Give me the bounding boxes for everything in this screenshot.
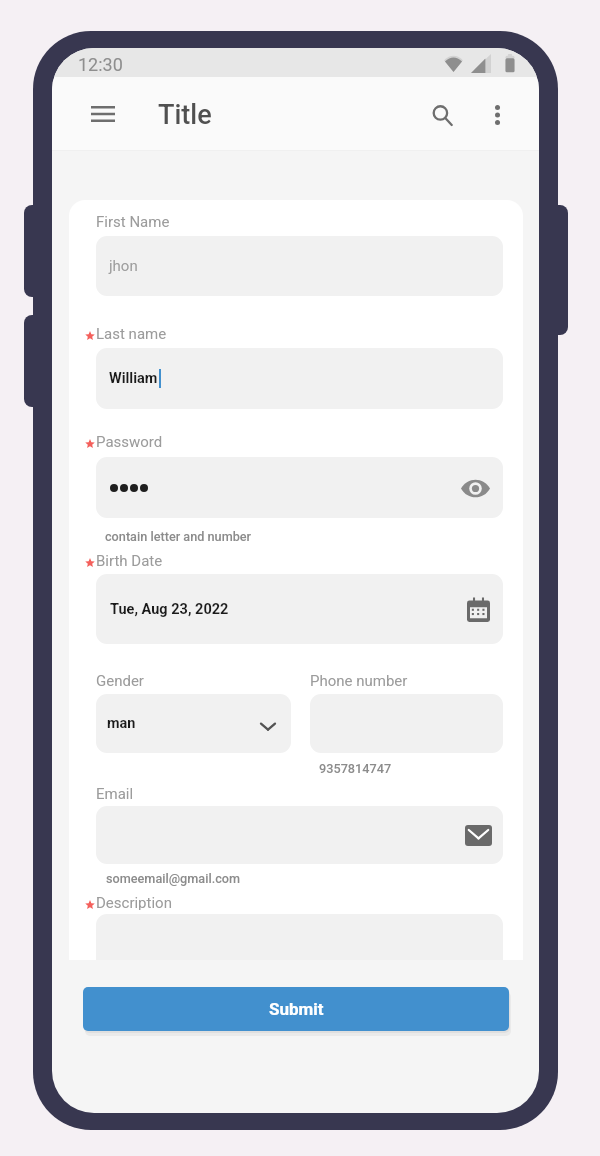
button[interactable]: Tue, Aug 23, 2022: [96, 574, 503, 644]
staticText: Submit: [269, 999, 324, 1019]
staticText: 12:30: [78, 54, 123, 75]
staticText: Title: [158, 99, 212, 131]
staticText: Password: [96, 433, 163, 449]
button[interactable]: jhon: [96, 236, 503, 296]
staticText: Tue, Aug 23, 2022: [110, 601, 229, 618]
staticText: Last name: [96, 325, 167, 341]
button[interactable]: Email: [462, 819, 494, 851]
button[interactable]: Show password: [96, 457, 503, 518]
button[interactable]: More options: [477, 95, 517, 135]
staticText: jhon: [109, 257, 138, 275]
button[interactable]: Open gender dropdown: [254, 712, 282, 740]
staticText: someemail@gmail.com: [106, 871, 241, 886]
staticText: man: [107, 715, 136, 732]
staticText: Phone number: [310, 672, 408, 688]
staticText: contain letter and number: [105, 529, 252, 544]
button[interactable]: Pick date: [462, 593, 494, 625]
button[interactable]: man: [96, 694, 291, 753]
button[interactable]: Show password: [459, 472, 491, 504]
staticText: William: [109, 370, 158, 387]
button[interactable]: William: [96, 348, 503, 409]
button[interactable]: Email: [96, 806, 503, 864]
staticText: Email: [96, 785, 134, 801]
button[interactable]: Menu: [79, 94, 127, 134]
staticText: Gender: [96, 672, 144, 688]
button[interactable]: Submit: [83, 987, 509, 1031]
staticText: Birth Date: [96, 552, 163, 568]
button[interactable]: Search: [419, 95, 465, 135]
staticText: 9357814747: [319, 761, 392, 776]
staticText: Description: [96, 894, 172, 910]
staticText: First Name: [96, 213, 170, 229]
